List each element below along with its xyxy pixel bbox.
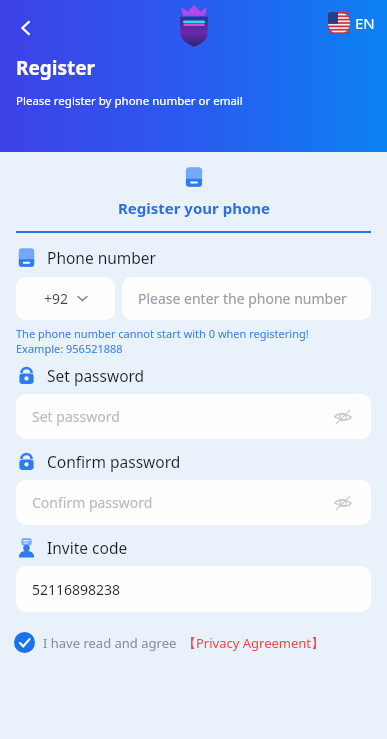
staticText: Register your phone (118, 198, 270, 218)
staticText: 【Privacy Agreement】 (183, 634, 325, 652)
staticText: +92 (44, 289, 69, 308)
button[interactable]: EN (324, 10, 379, 36)
staticText: The phone number cannot start with 0 whe… (16, 326, 309, 341)
staticText: Set password (32, 407, 120, 426)
button[interactable]: Confirm password (16, 480, 371, 525)
button[interactable]: Register your phone (88, 164, 300, 220)
staticText: Register (16, 55, 96, 81)
button[interactable]: I have read and agree (14, 632, 325, 653)
button[interactable]: +92 (16, 277, 115, 320)
staticText: 52116898238 (32, 580, 121, 599)
staticText: Please register by phone number or email (16, 93, 243, 109)
button[interactable]: Set password (16, 394, 371, 439)
staticText: Example: 956521888 (16, 341, 123, 356)
button[interactable]: 52116898238 (16, 566, 371, 612)
staticText: Confirm password (47, 451, 181, 472)
staticText: Phone number (47, 247, 157, 268)
staticText: Confirm password (32, 493, 153, 512)
staticText: I have read and agree (43, 634, 177, 652)
button[interactable]: Please enter the phone number (122, 277, 371, 320)
staticText: Set password (47, 365, 145, 386)
staticText: Please enter the phone number (138, 289, 347, 308)
button[interactable]: Show password (331, 491, 355, 515)
button[interactable]: Show password (331, 405, 355, 429)
button[interactable]: Back (6, 8, 46, 48)
staticText: Invite code (47, 537, 128, 558)
staticText: EN (355, 13, 375, 33)
